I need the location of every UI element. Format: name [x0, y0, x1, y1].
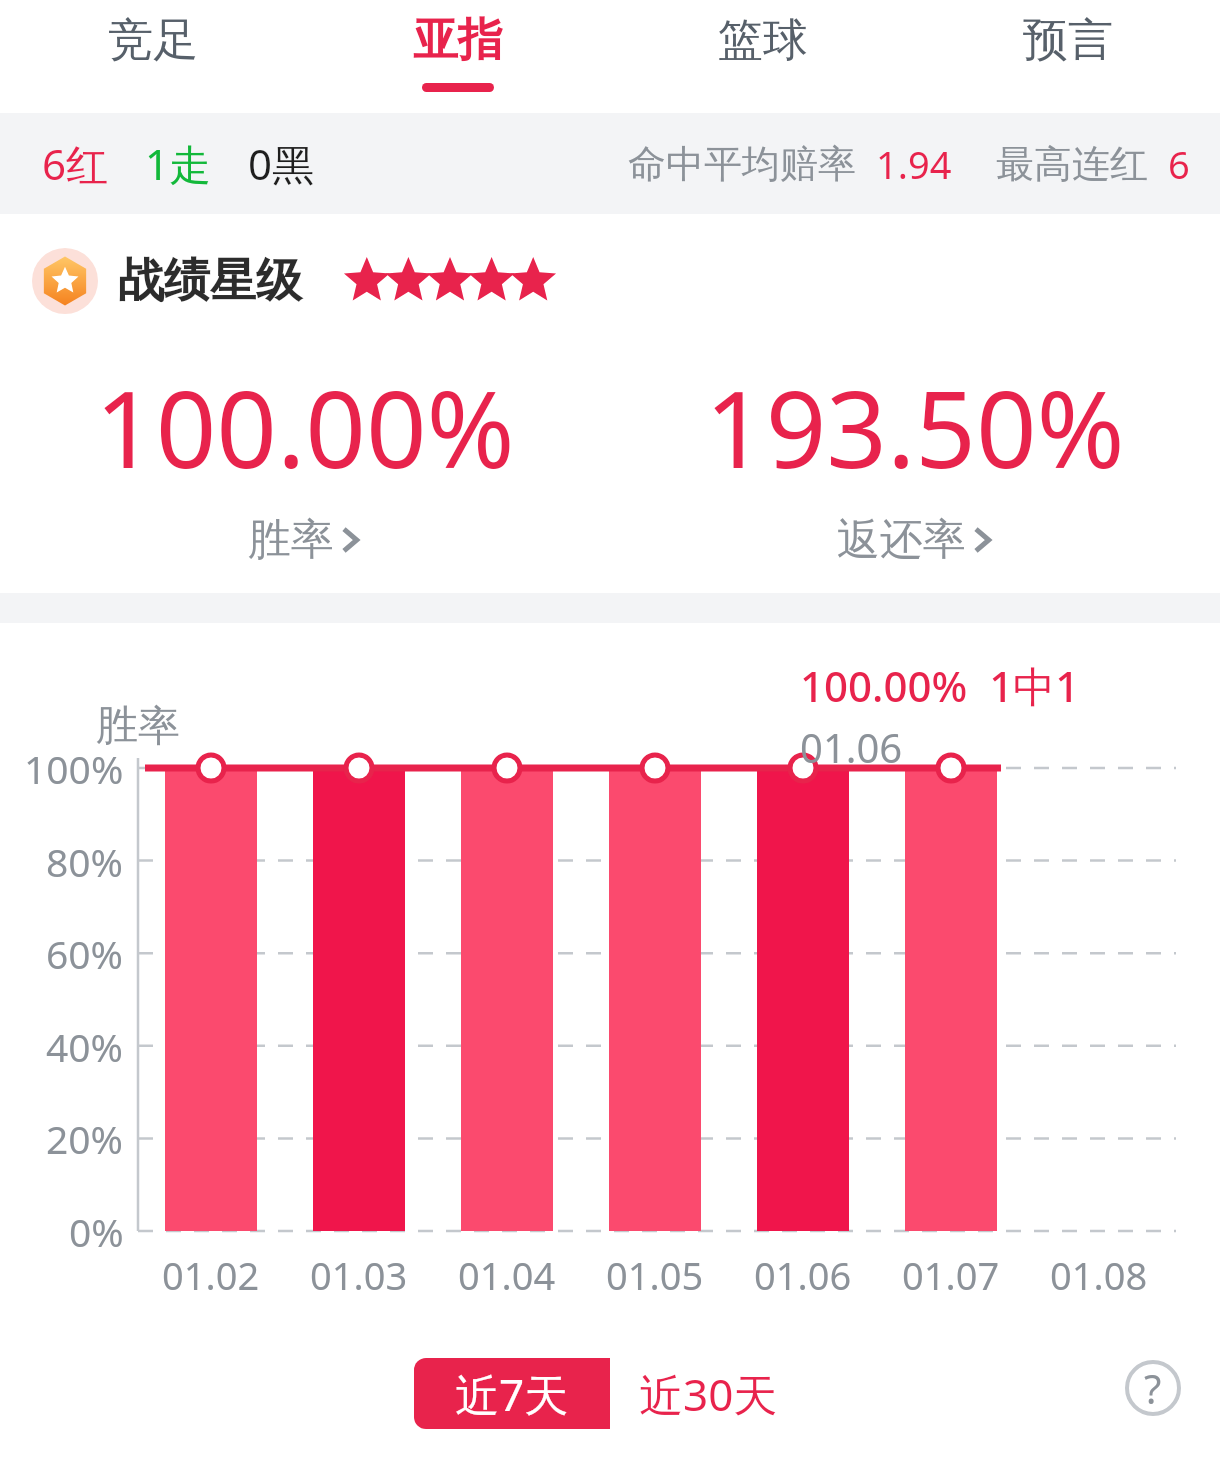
staticText: 01.07	[902, 1249, 1000, 1301]
staticText: 01.03	[310, 1249, 408, 1301]
staticText: 近30天	[639, 1364, 778, 1424]
staticText: 100.00%	[95, 355, 515, 499]
staticText: 返还率	[837, 513, 966, 567]
button[interactable]: 预言	[915, 0, 1220, 113]
staticText: 80%	[46, 835, 124, 888]
button[interactable]: 篮球	[610, 0, 915, 113]
staticText: 20%	[46, 1112, 124, 1165]
staticText: 篮球	[718, 12, 808, 69]
button[interactable]: 100.00%	[0, 355, 610, 567]
staticText: ?	[1144, 1361, 1162, 1415]
staticText: 01.05	[606, 1249, 704, 1301]
staticText: 命中平均赔率	[628, 140, 856, 188]
button[interactable]: 193.50%	[610, 355, 1220, 567]
staticText: 01.06	[800, 720, 903, 774]
staticText: 战绩星级	[118, 252, 302, 310]
button[interactable]: 竞足	[0, 0, 305, 113]
staticText: 01.08	[1050, 1249, 1148, 1301]
button[interactable]: 近7天	[414, 1358, 610, 1429]
staticText: 100.00% 1中1	[800, 657, 1080, 714]
staticText: 亚指	[413, 12, 503, 69]
button[interactable]: 近30天	[610, 1358, 806, 1429]
staticText: 胜率	[248, 513, 334, 567]
staticText: 60%	[46, 927, 124, 980]
staticText: 01.06	[754, 1249, 852, 1301]
staticText: 近7天	[455, 1364, 569, 1424]
staticText: 6	[1168, 138, 1190, 190]
staticText: 1走	[145, 135, 212, 192]
staticText: 40%	[46, 1020, 124, 1073]
staticText: 0黑	[248, 135, 315, 192]
staticText: 100%	[24, 742, 124, 795]
button[interactable]: 亚指	[305, 0, 610, 113]
staticText: 6红	[42, 135, 109, 192]
staticText: 193.50%	[705, 355, 1125, 499]
staticText: 1.94	[876, 138, 952, 190]
staticText: 01.02	[162, 1249, 260, 1301]
staticText: 最高连红	[996, 140, 1148, 188]
staticText: 0%	[69, 1205, 124, 1258]
staticText: 预言	[1023, 12, 1113, 69]
button[interactable]: Help	[1125, 1360, 1181, 1416]
staticText: 胜率	[96, 700, 180, 753]
staticText: 01.04	[458, 1249, 556, 1301]
staticText: 竞足	[108, 12, 198, 69]
